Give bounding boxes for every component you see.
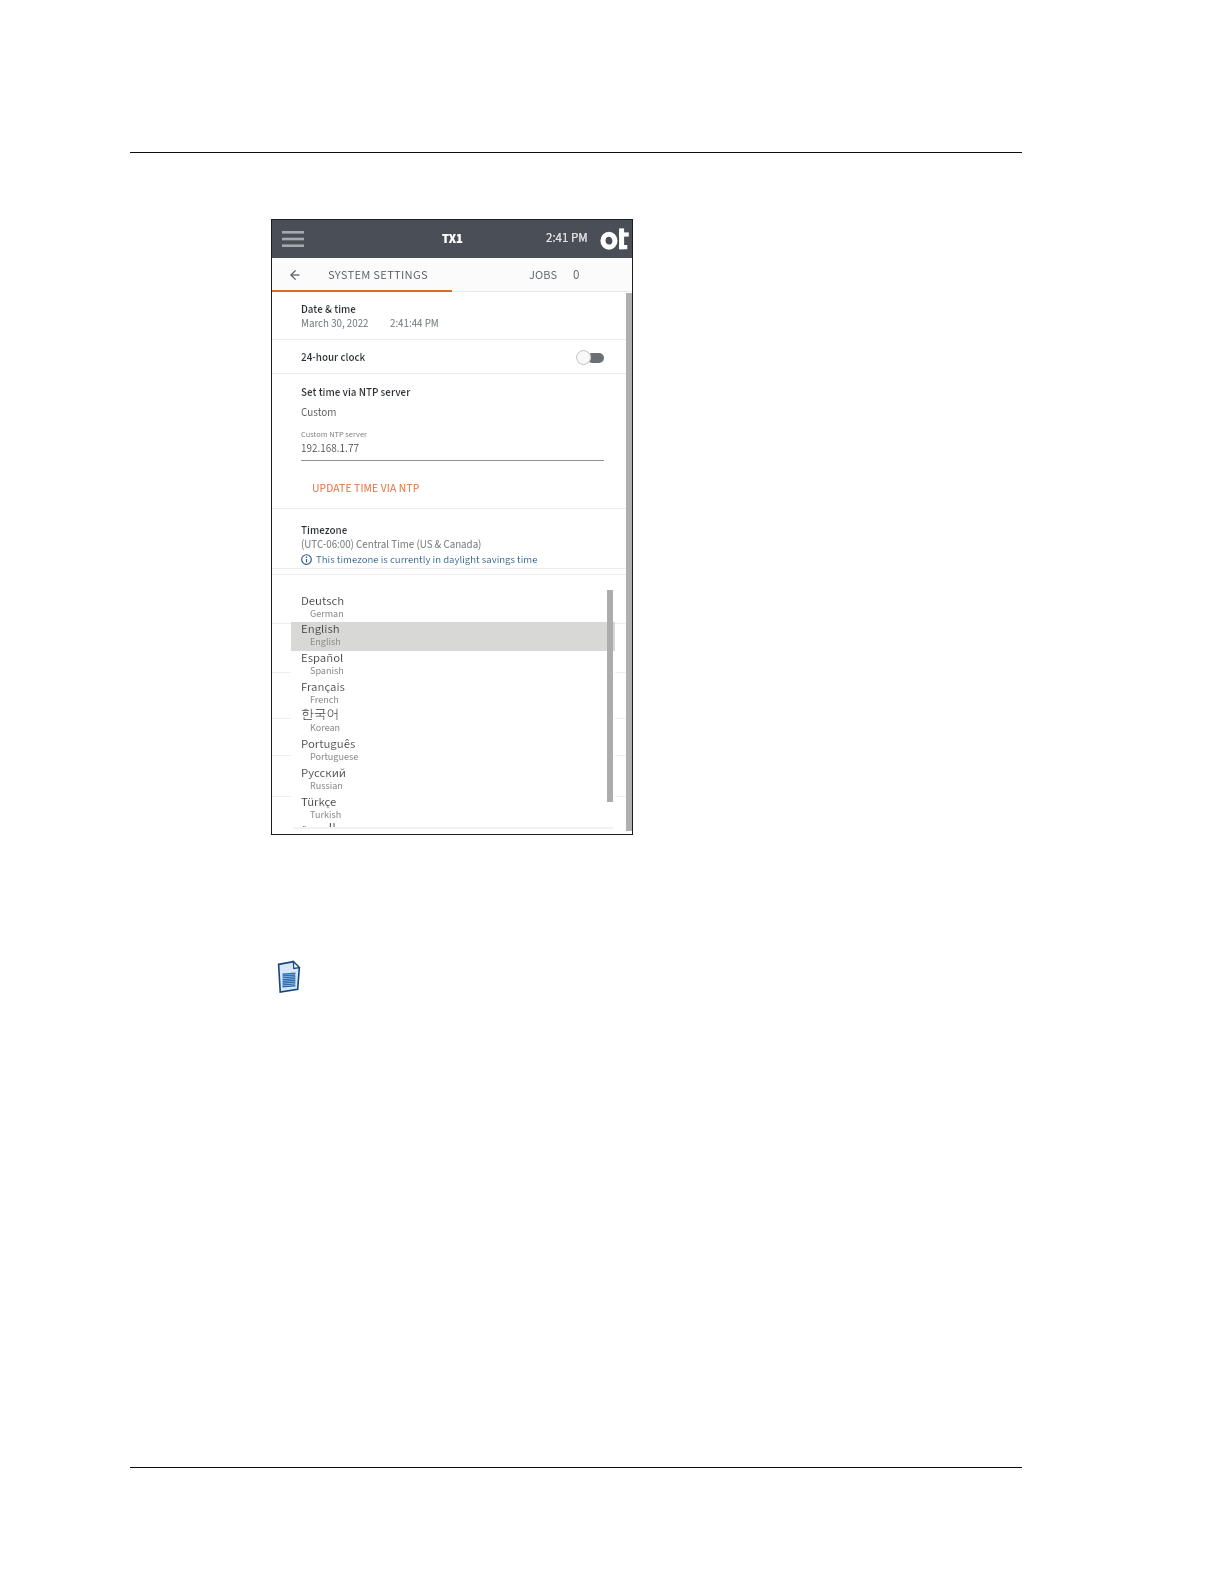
staticText: Timezone	[301, 523, 348, 539]
other: ot logo	[600, 228, 630, 250]
button[interactable]: العربية	[291, 823, 615, 829]
staticText: العربية	[301, 821, 336, 829]
button[interactable]: SYSTEM SETTINGS	[328, 266, 428, 284]
button[interactable]: Deutsch	[291, 594, 615, 623]
button[interactable]: 24-hour clock	[272, 340, 632, 373]
staticText: Spanish	[310, 664, 344, 678]
button[interactable]: Français	[291, 680, 615, 709]
staticText: German	[310, 607, 344, 621]
button[interactable]: Timezone	[272, 509, 632, 568]
staticText: March 30, 2022	[301, 316, 369, 332]
button[interactable]: Русский	[291, 766, 615, 795]
button[interactable]: UPDATE TIME VIA NTP	[312, 480, 420, 496]
staticText: 2:41 PM	[546, 229, 588, 247]
button[interactable]: Date & time	[272, 292, 632, 339]
staticText: JOBS	[529, 266, 558, 284]
staticText: 2:41:44 PM	[390, 316, 439, 332]
button[interactable]: Custom NTP server	[301, 422, 604, 462]
staticText: English	[310, 635, 341, 649]
staticText: 0	[573, 266, 580, 284]
staticText: Deutsch	[301, 592, 345, 610]
staticText: French	[310, 693, 339, 707]
button[interactable]: Português	[291, 737, 615, 766]
button[interactable]: English	[291, 622, 615, 651]
staticText: TX1	[442, 230, 463, 248]
button[interactable]: Open navigation menu	[279, 228, 307, 249]
staticText: Custom NTP server	[301, 429, 367, 441]
staticText: Set time via NTP server	[301, 385, 411, 401]
button[interactable]: 24-hour clock, off	[576, 349, 604, 367]
staticText: Español	[301, 649, 344, 667]
staticText: 한국어	[301, 706, 340, 722]
staticText: Portuguese	[310, 750, 359, 764]
staticText: 192.168.1.77	[301, 441, 359, 457]
staticText: Date & time	[301, 302, 356, 318]
button[interactable]: 한국어	[291, 708, 615, 737]
other: Document	[277, 961, 300, 992]
button[interactable]: Set time via NTP server	[272, 374, 632, 418]
button[interactable]: Español	[291, 651, 615, 680]
staticText: English	[301, 620, 340, 638]
button[interactable]: Türkçe	[291, 795, 615, 824]
staticText: Русский	[301, 764, 346, 782]
button[interactable]: Back	[285, 265, 305, 285]
staticText: Português	[301, 735, 356, 753]
staticText: This timezone is currently in daylight s…	[316, 552, 538, 567]
staticText: Türkçe	[301, 793, 337, 811]
staticText: Français	[301, 678, 345, 696]
staticText: (UTC-06:00) Central Time (US & Canada)	[301, 537, 482, 553]
staticText: Turkish	[310, 808, 342, 822]
staticText: Russian	[310, 779, 343, 793]
staticText: 24-hour clock	[301, 350, 366, 366]
button[interactable]: JOBS	[529, 266, 580, 284]
staticText: Custom	[301, 405, 337, 421]
staticText: SYSTEM SETTINGS	[328, 266, 428, 284]
staticText: UPDATE TIME VIA NTP	[312, 480, 420, 496]
staticText: Korean	[310, 721, 341, 735]
